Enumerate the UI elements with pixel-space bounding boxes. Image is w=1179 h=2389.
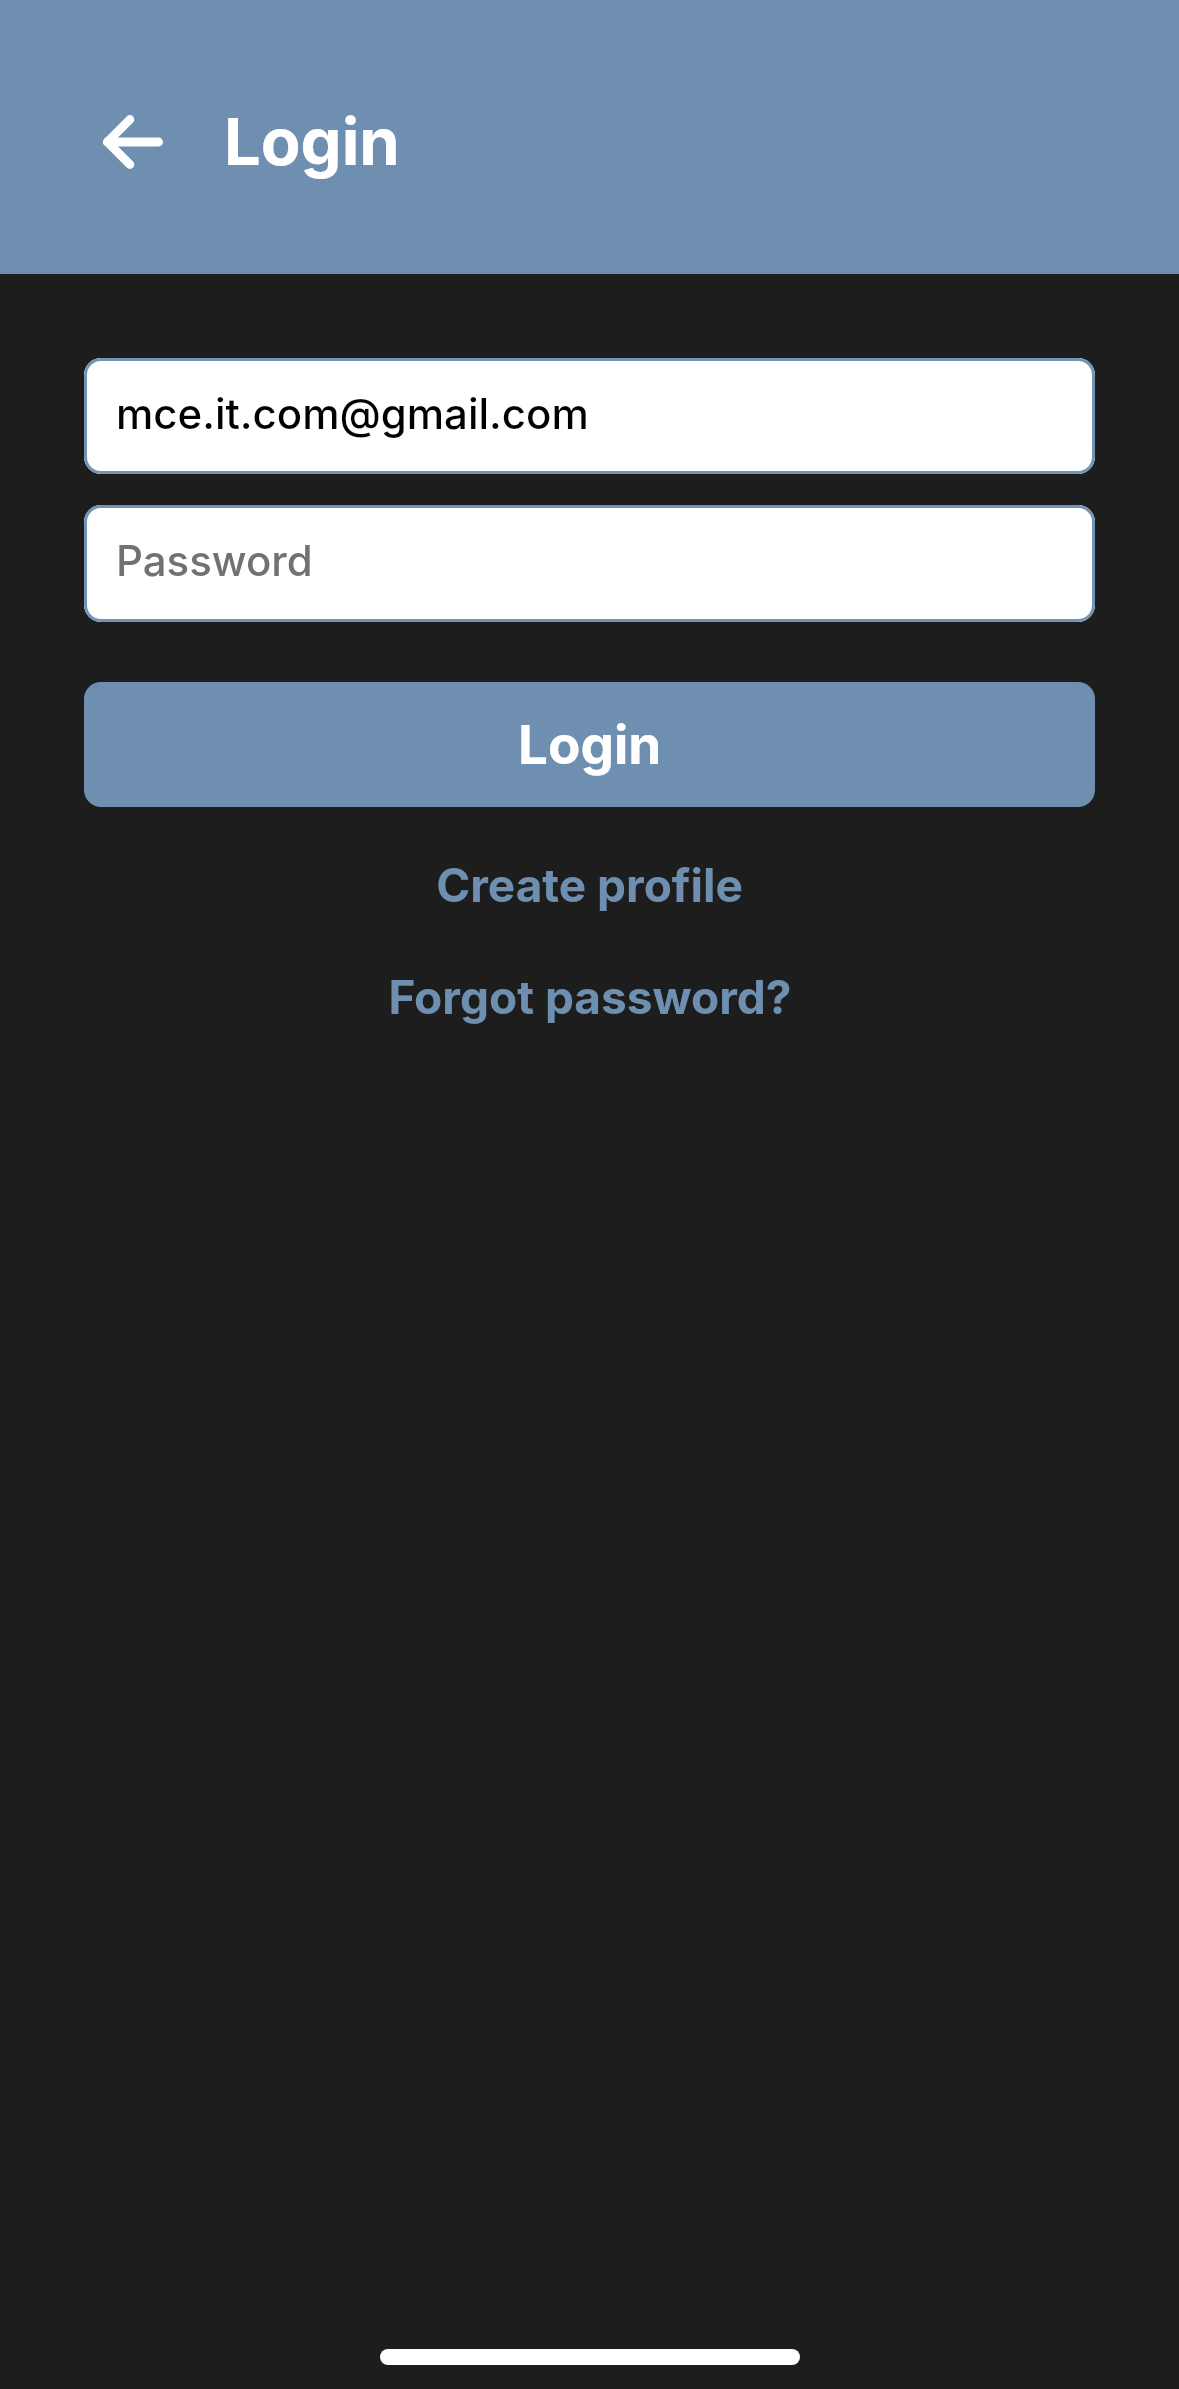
button[interactable]: mce.it.com@gmail.com xyxy=(84,358,1095,474)
staticText: mce.it.com@gmail.com xyxy=(116,388,589,439)
staticText: Login xyxy=(224,102,400,181)
button[interactable]: Create profile xyxy=(418,847,761,923)
button[interactable]: Login xyxy=(84,682,1095,807)
button[interactable]: Password xyxy=(84,505,1095,622)
staticText: Password xyxy=(116,535,313,586)
button[interactable]: Forgot password? xyxy=(370,959,810,1035)
staticText: Create profile xyxy=(436,857,743,913)
staticText: Forgot password? xyxy=(388,969,792,1025)
staticText: Login xyxy=(518,713,662,777)
button[interactable]: Back xyxy=(90,99,176,185)
